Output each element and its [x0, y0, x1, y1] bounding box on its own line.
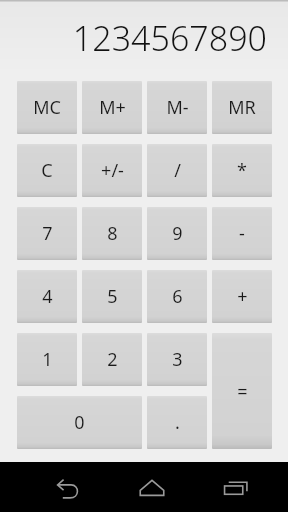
staticText: M-: [166, 95, 189, 120]
staticText: 5: [107, 284, 118, 309]
button[interactable]: 8: [82, 207, 142, 260]
button[interactable]: 9: [147, 207, 207, 260]
staticText: 1234567890: [72, 15, 267, 61]
staticText: .: [175, 410, 180, 435]
button[interactable]: .: [147, 396, 207, 449]
button[interactable]: 4: [17, 270, 77, 323]
staticText: 7: [42, 221, 53, 246]
staticText: 2: [107, 347, 118, 372]
staticText: 4: [42, 284, 53, 309]
staticText: M+: [99, 95, 126, 120]
staticText: MR: [228, 95, 256, 120]
button[interactable]: 5: [82, 270, 142, 323]
button[interactable]: MR: [212, 81, 272, 134]
staticText: /: [174, 158, 181, 183]
staticText: -: [239, 221, 245, 246]
button[interactable]: C: [17, 144, 77, 197]
staticText: *: [237, 158, 247, 183]
staticText: MC: [33, 95, 61, 120]
button[interactable]: 3: [147, 333, 207, 386]
button[interactable]: Recent apps: [208, 462, 264, 512]
button[interactable]: /: [147, 144, 207, 197]
staticText: 6: [172, 284, 183, 309]
button[interactable]: Back: [40, 462, 96, 512]
staticText: 0: [74, 410, 85, 435]
button[interactable]: +/-: [82, 144, 142, 197]
staticText: C: [41, 158, 53, 183]
button[interactable]: +: [212, 270, 272, 323]
button[interactable]: 1: [17, 333, 77, 386]
staticText: 1: [42, 347, 53, 372]
button[interactable]: 7: [17, 207, 77, 260]
button[interactable]: Home: [124, 462, 180, 512]
button[interactable]: 0: [17, 396, 142, 449]
staticText: 3: [172, 347, 183, 372]
staticText: =: [237, 379, 248, 404]
button[interactable]: 6: [147, 270, 207, 323]
button[interactable]: MC: [17, 81, 77, 134]
button[interactable]: 2: [82, 333, 142, 386]
staticText: +/-: [101, 158, 124, 183]
staticText: +: [237, 284, 248, 309]
button[interactable]: *: [212, 144, 272, 197]
button[interactable]: M-: [147, 81, 207, 134]
staticText: 8: [107, 221, 118, 246]
staticText: 9: [172, 221, 183, 246]
button[interactable]: -: [212, 207, 272, 260]
button[interactable]: 1234567890: [0, 2, 288, 74]
button[interactable]: M+: [82, 81, 142, 134]
button[interactable]: =: [212, 333, 272, 449]
